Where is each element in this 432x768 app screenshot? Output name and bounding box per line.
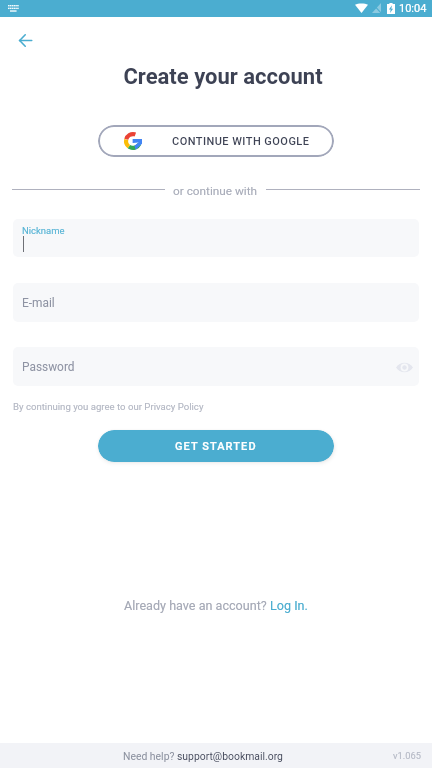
staticText: Password bbox=[22, 360, 75, 374]
staticText: v1.065 bbox=[393, 750, 421, 761]
staticText: or continue with bbox=[173, 184, 258, 198]
staticText: GET STARTED bbox=[175, 440, 257, 453]
button[interactable]: Nickname bbox=[13, 219, 419, 257]
button[interactable]: By continuing you agree to our Privacy P… bbox=[13, 401, 204, 412]
staticText: CONTINUE WITH GOOGLE bbox=[172, 135, 310, 148]
staticText: support@bookmail.org bbox=[177, 750, 283, 762]
staticText: 10:04 bbox=[399, 2, 427, 15]
button[interactable]: Show password bbox=[392, 355, 416, 379]
staticText: Nickname bbox=[22, 225, 65, 236]
button[interactable]: Need help? bbox=[123, 750, 283, 762]
button[interactable]: Password bbox=[13, 347, 419, 386]
button[interactable]: Log In. bbox=[270, 598, 308, 613]
staticText: By continuing you agree to our Privacy P… bbox=[13, 401, 204, 412]
button[interactable]: CONTINUE WITH GOOGLE bbox=[98, 125, 334, 157]
button[interactable]: E-mail bbox=[13, 283, 419, 322]
button[interactable]: GET STARTED bbox=[98, 430, 334, 462]
staticText: E-mail bbox=[22, 296, 55, 310]
staticText: Log In. bbox=[270, 598, 308, 613]
button[interactable]: Back bbox=[12, 27, 39, 54]
staticText: Need help? bbox=[123, 750, 177, 762]
staticText: Already have an account? bbox=[124, 598, 270, 613]
staticText: Create your account bbox=[7, 64, 432, 90]
